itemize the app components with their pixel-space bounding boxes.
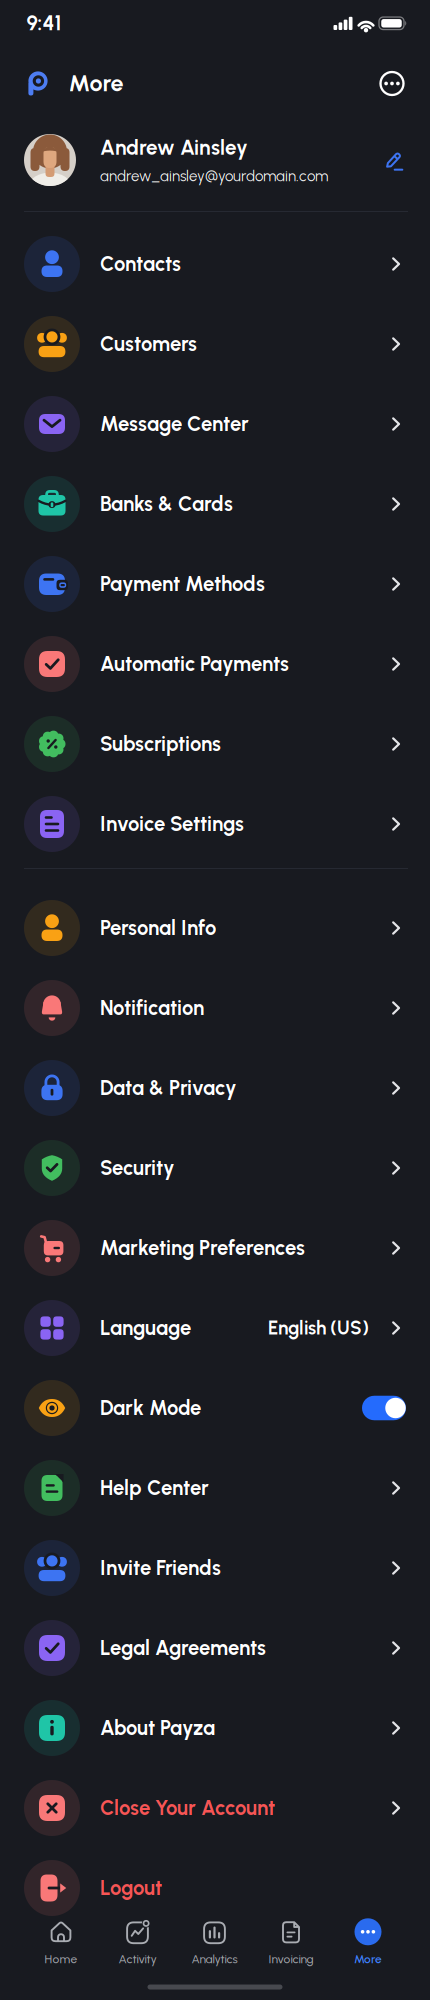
button[interactable]: More options [380,72,403,95]
staticText: More [354,1952,382,1966]
staticText: More [68,69,123,97]
button[interactable]: Legal Agreements [0,1608,430,1688]
staticText: Close Your Account [100,1796,275,1820]
button[interactable]: Edit profile [384,151,403,170]
staticText: Home [44,1952,77,1966]
staticText: Message Center [100,412,249,436]
staticText: Help Center [100,1476,209,1500]
button[interactable]: More [330,1913,406,1971]
staticText: Contacts [100,252,181,276]
button[interactable]: Data & Privacy [0,1048,430,1128]
button[interactable]: Invoice Settings [0,784,430,864]
staticText: Automatic Payments [100,652,289,676]
button[interactable]: Help Center [0,1448,430,1528]
button[interactable]: Personal Info [0,888,430,968]
staticText: Logout [100,1876,162,1900]
button[interactable]: Payment Methods [0,544,430,624]
button[interactable]: Language [0,1288,430,1368]
staticText: Banks & Cards [100,492,233,516]
button[interactable]: Contacts [0,224,430,304]
staticText: Invite Friends [100,1556,221,1580]
staticText: Notification [100,996,204,1020]
staticText: Andrew Ainsley [100,135,248,160]
staticText: About Payza [100,1716,215,1740]
button[interactable]: Automatic Payments [0,624,430,704]
button[interactable]: Message Center [0,384,430,464]
staticText: 9:41 [26,11,61,35]
staticText: Language [100,1316,191,1340]
button[interactable]: Andrew Ainsley [0,124,430,196]
staticText: Payment Methods [100,572,265,596]
staticText: English (US) [268,1317,369,1339]
button[interactable]: Marketing Preferences [0,1208,430,1288]
staticText: Invoicing [268,1952,313,1966]
button[interactable]: Banks & Cards [0,464,430,544]
staticText: Invoice Settings [100,812,244,836]
button[interactable]: Logout [0,1848,430,1928]
staticText: Analytics [191,1952,237,1966]
staticText: Data & Privacy [100,1076,237,1100]
button[interactable]: Dark Mode [0,1368,430,1448]
button[interactable]: Analytics [176,1913,252,1971]
staticText: Activity [118,1952,156,1966]
staticText: Customers [100,332,197,356]
staticText: Subscriptions [100,732,221,756]
staticText: Marketing Preferences [100,1236,305,1260]
button[interactable]: Activity [99,1913,175,1971]
staticText: Personal Info [100,916,216,940]
staticText: andrew_ainsley@yourdomain.com [100,167,328,185]
button[interactable]: About Payza [0,1688,430,1768]
button[interactable]: Subscriptions [0,704,430,784]
button[interactable]: Invite Friends [0,1528,430,1608]
button[interactable]: Notification [0,968,430,1048]
button[interactable]: Security [0,1128,430,1208]
button[interactable]: Close Your Account [0,1768,430,1848]
button[interactable]: Customers [0,304,430,384]
staticText: Dark Mode [100,1396,201,1420]
staticText: Legal Agreements [100,1636,266,1660]
button[interactable]: Home [23,1913,99,1971]
staticText: Security [100,1156,175,1180]
button[interactable]: Invoicing [253,1913,329,1971]
